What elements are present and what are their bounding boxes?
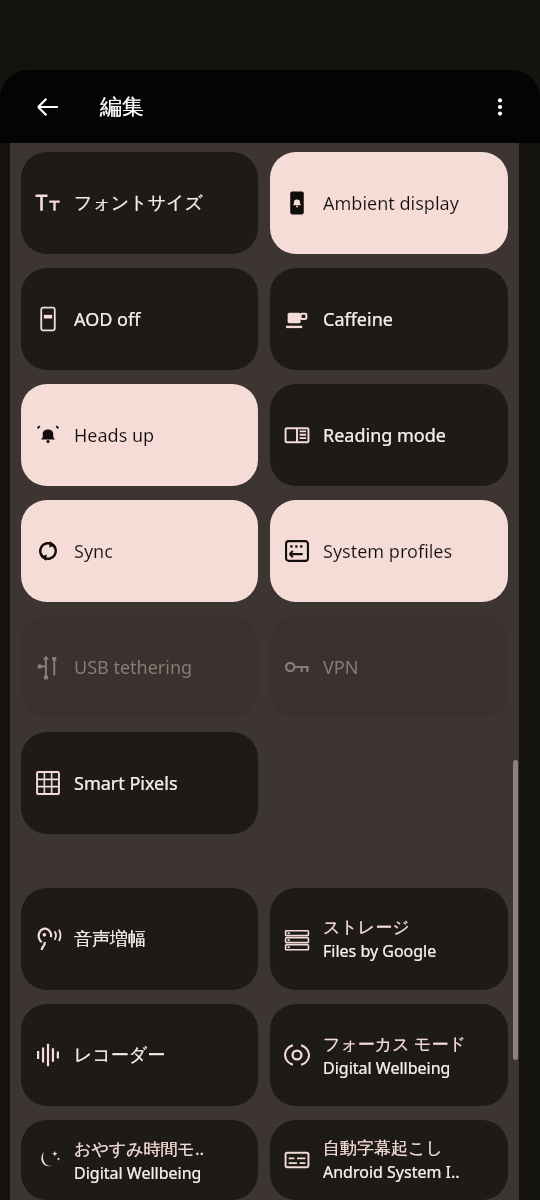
staticText: Digital Wellbeing: [74, 1162, 202, 1184]
staticText: Digital Wellbeing: [323, 1057, 451, 1079]
button[interactable]: Ambient display: [270, 152, 508, 254]
staticText: Android System I‥: [323, 1161, 460, 1183]
button[interactable]: Caffeine: [270, 268, 508, 370]
staticText: 音声増幅: [74, 928, 146, 951]
staticText: おやすみ時間モ‥: [74, 1137, 205, 1160]
staticText: フォーカス モード: [323, 1032, 466, 1055]
staticText: ストレージ: [323, 917, 410, 938]
button[interactable]: Smart Pixels: [21, 732, 258, 834]
staticText: Reading mode: [323, 423, 446, 448]
button[interactable]: USB tethering: [21, 616, 258, 718]
button[interactable]: Heads up: [21, 384, 258, 486]
button[interactable]: 自動字幕起こし: [270, 1120, 508, 1200]
button[interactable]: VPN: [270, 616, 508, 718]
button[interactable]: Reading mode: [270, 384, 508, 486]
staticText: USB tethering: [74, 655, 193, 680]
staticText: フォントサイズ: [74, 192, 203, 215]
staticText: レコーダー: [74, 1044, 166, 1067]
staticText: Sync: [74, 539, 113, 564]
staticText: Smart Pixels: [74, 771, 178, 796]
button[interactable]: おやすみ時間モ‥: [21, 1120, 258, 1200]
staticText: AOD off: [74, 307, 141, 332]
staticText: Files by Google: [323, 940, 437, 962]
button[interactable]: AOD off: [21, 268, 258, 370]
staticText: Caffeine: [323, 307, 393, 332]
button[interactable]: More options: [476, 83, 524, 131]
button[interactable]: Back: [24, 83, 72, 131]
button[interactable]: レコーダー: [21, 1004, 258, 1106]
staticText: 自動字幕起こし: [323, 1138, 443, 1159]
staticText: VPN: [323, 655, 359, 680]
staticText: Heads up: [74, 423, 155, 448]
button[interactable]: Sync: [21, 500, 258, 602]
staticText: 編集: [100, 93, 144, 121]
button[interactable]: フォーカス モード: [270, 1004, 508, 1106]
staticText: System profiles: [323, 539, 453, 564]
button[interactable]: フォントサイズ: [21, 152, 258, 254]
button[interactable]: 音声増幅: [21, 888, 258, 990]
button[interactable]: ストレージ: [270, 888, 508, 990]
button[interactable]: System profiles: [270, 500, 508, 602]
staticText: Ambient display: [323, 191, 459, 216]
